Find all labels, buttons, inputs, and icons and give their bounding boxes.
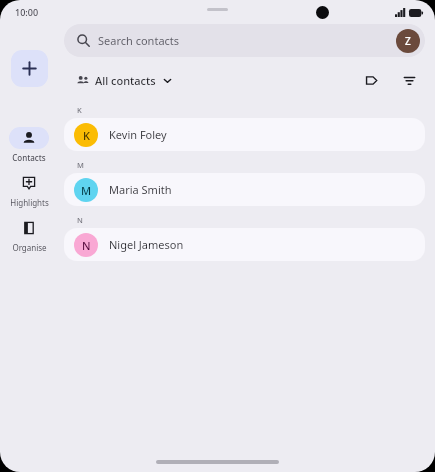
staticText: 10:00 bbox=[15, 6, 39, 18]
staticText: K bbox=[77, 105, 82, 115]
staticText: Organise bbox=[12, 242, 47, 253]
button[interactable]: M bbox=[64, 173, 425, 206]
button[interactable]: Organise bbox=[2, 217, 56, 253]
staticText: All contacts bbox=[95, 73, 156, 88]
staticText: M bbox=[77, 160, 84, 170]
button[interactable]: All contacts bbox=[64, 70, 184, 91]
staticText: K bbox=[83, 128, 90, 143]
staticText: Nigel Jameson bbox=[109, 237, 184, 252]
button[interactable]: N bbox=[64, 228, 425, 261]
staticText: N bbox=[82, 238, 91, 253]
button[interactable]: Create contact bbox=[11, 50, 48, 87]
staticText: N bbox=[77, 215, 83, 225]
button[interactable]: Filter bbox=[395, 66, 423, 94]
button[interactable]: K bbox=[64, 118, 425, 151]
staticText: Search contacts bbox=[98, 33, 180, 48]
button[interactable]: Contacts bbox=[2, 127, 56, 163]
button[interactable]: Highlights bbox=[2, 172, 56, 208]
staticText: Contacts bbox=[12, 152, 46, 163]
staticText: Z bbox=[405, 34, 411, 48]
button[interactable]: Search contacts bbox=[64, 24, 425, 57]
button[interactable]: Labels bbox=[357, 66, 385, 94]
staticText: Maria Smith bbox=[109, 182, 172, 197]
staticText: M bbox=[81, 183, 92, 198]
staticText: Highlights bbox=[10, 197, 49, 208]
button[interactable]: Account bbox=[396, 29, 420, 53]
staticText: Kevin Foley bbox=[109, 127, 167, 142]
